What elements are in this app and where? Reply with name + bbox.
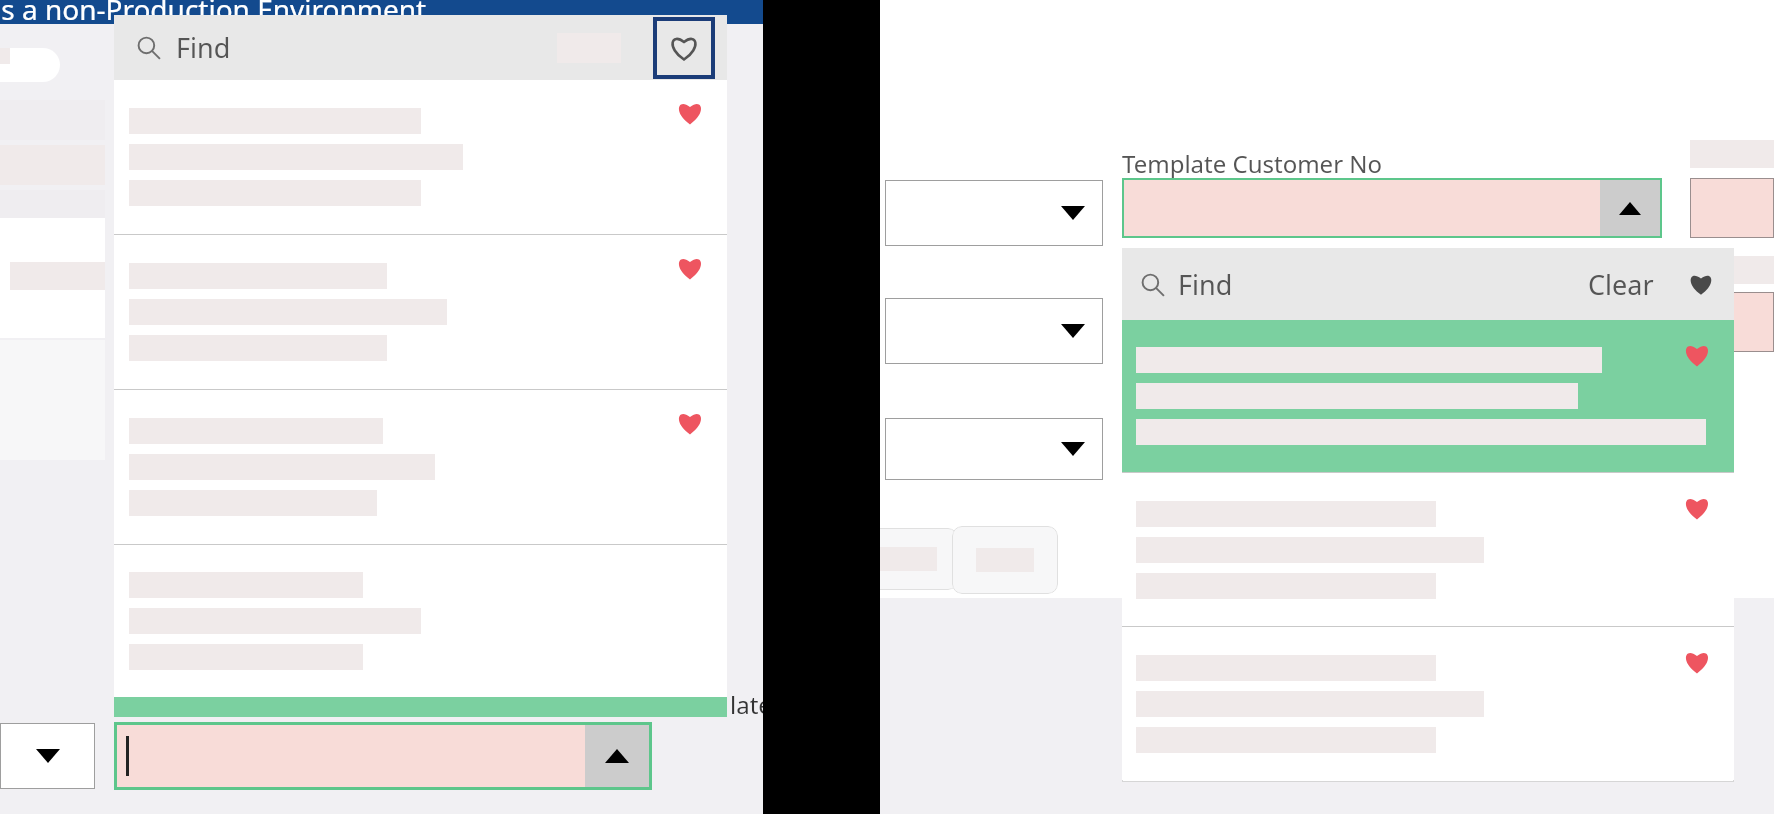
button[interactable] bbox=[952, 526, 1058, 594]
button[interactable] bbox=[114, 390, 727, 544]
button[interactable] bbox=[114, 545, 727, 697]
staticText: Find bbox=[1178, 266, 1233, 303]
button[interactable]: Find bbox=[1140, 266, 1233, 303]
button[interactable]: Find bbox=[136, 29, 231, 66]
button[interactable] bbox=[114, 235, 727, 389]
staticText: Clear bbox=[1588, 266, 1654, 303]
staticText: late bbox=[730, 688, 772, 721]
button[interactable] bbox=[858, 528, 958, 590]
button[interactable]: Collapse bbox=[585, 725, 649, 787]
staticText: Template Customer No bbox=[1122, 147, 1383, 180]
staticText: Find bbox=[176, 29, 231, 66]
button[interactable]: Select bbox=[885, 180, 1103, 246]
button[interactable]: Select bbox=[885, 418, 1103, 480]
button[interactable]: Favourites filter bbox=[653, 17, 715, 79]
staticText: is a non-Production Environment bbox=[0, 0, 427, 28]
button[interactable]: Select bbox=[885, 298, 1103, 364]
button[interactable] bbox=[114, 80, 727, 234]
button[interactable] bbox=[1122, 320, 1734, 472]
button[interactable]: Select bbox=[0, 723, 95, 789]
button[interactable]: Favourites filter bbox=[1682, 265, 1720, 303]
button[interactable] bbox=[1122, 627, 1734, 780]
button[interactable] bbox=[117, 725, 585, 787]
button[interactable]: Clear bbox=[1582, 266, 1660, 303]
button[interactable] bbox=[1122, 473, 1734, 626]
button[interactable]: Collapse bbox=[1600, 180, 1660, 236]
